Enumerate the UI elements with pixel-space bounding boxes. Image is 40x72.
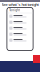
staticText: Tonight — [9, 8, 20, 12]
staticText: See what's hot tonight — [1, 2, 38, 7]
